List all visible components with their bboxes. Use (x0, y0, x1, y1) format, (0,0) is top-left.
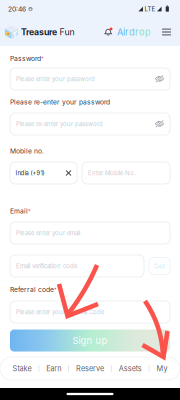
button[interactable]: Assets (112, 357, 149, 380)
staticText: * (54, 286, 57, 293)
staticText: r (125, 26, 129, 38)
button[interactable]: A (112, 26, 151, 38)
staticText: Email (10, 207, 28, 215)
button[interactable]: Sign up (10, 329, 170, 351)
staticText: o (139, 26, 145, 38)
button[interactable]: My (149, 357, 174, 380)
button[interactable]: Menu (151, 28, 171, 36)
staticText: Earn (46, 364, 61, 373)
staticText: Stake (13, 364, 32, 373)
staticText: r (135, 26, 139, 38)
staticText: Get (154, 262, 165, 270)
staticText: India (+91) (15, 169, 44, 177)
staticText: Please re-enter your password (16, 120, 103, 128)
staticText: p (145, 26, 151, 38)
staticText: LTE (144, 5, 155, 13)
staticText: * (28, 208, 31, 214)
button[interactable]: Earn (39, 357, 68, 380)
staticText: A (117, 26, 123, 38)
staticText: Sign up (72, 335, 107, 346)
button[interactable]: Notifications (104, 27, 112, 36)
staticText: 20:46 (8, 5, 26, 13)
staticText: Treasure (21, 27, 57, 37)
staticText: * (41, 55, 44, 62)
staticText: Please enter your password (16, 75, 95, 83)
staticText: Referral code (10, 285, 54, 294)
staticText: Email verification code (16, 262, 77, 270)
staticText: Please re-enter your password (10, 98, 110, 106)
button[interactable]: Stake (6, 357, 39, 380)
staticText: Please enter your Referral Code (16, 308, 104, 316)
staticText: Assets (119, 364, 142, 373)
staticText: My (156, 364, 167, 373)
button[interactable]: Get (149, 257, 170, 274)
button[interactable]: Treasure (4, 25, 74, 39)
staticText: Reserve (76, 364, 104, 373)
staticText: d (129, 26, 135, 38)
button[interactable]: Reserve (69, 357, 111, 380)
staticText: Fun (59, 27, 74, 37)
staticText: Enter Mobile No. (88, 169, 136, 177)
staticText: Mobile no. (10, 147, 44, 155)
staticText: Password (10, 54, 41, 63)
staticText: Please enter your email (16, 229, 80, 237)
staticText: i (123, 26, 125, 38)
